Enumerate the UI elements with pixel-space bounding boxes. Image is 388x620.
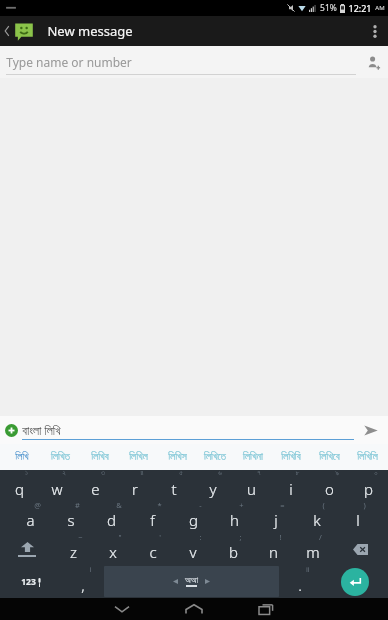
- button[interactable]: লিখিবি: [272, 444, 310, 470]
- button[interactable]: #: [50, 501, 91, 533]
- button[interactable]: Shift: [0, 533, 54, 565]
- staticText: লিখিবে: [319, 452, 340, 462]
- staticText: লিখিলি: [357, 452, 378, 462]
- button[interactable]: !: [253, 533, 293, 565]
- staticText: y: [209, 479, 217, 499]
- button[interactable]: Backspace: [333, 533, 388, 565]
- staticText: o: [325, 479, 334, 499]
- staticText: ২: [62, 469, 66, 477]
- staticText: লিখিতে: [204, 452, 226, 462]
- staticText: ৫: [179, 469, 183, 477]
- staticText: e: [91, 479, 100, 499]
- button[interactable]: ': [133, 533, 173, 565]
- staticText: 12:21: [348, 2, 372, 14]
- button[interactable]: Symbols and numbers: [0, 565, 62, 598]
- staticText: ৬: [218, 469, 222, 477]
- button[interactable]: :: [173, 533, 213, 565]
- staticText: b: [229, 542, 238, 562]
- button[interactable]: More options: [362, 16, 388, 46]
- button[interactable]: ১: [0, 470, 38, 501]
- button[interactable]: লিখিল: [119, 444, 158, 470]
- staticText: বাংলা লিখি: [22, 422, 61, 438]
- staticText: c: [149, 542, 157, 562]
- staticText: ;: [239, 532, 242, 542]
- button[interactable]: ;: [213, 533, 253, 565]
- staticText: h: [230, 510, 239, 530]
- staticText: s: [67, 510, 75, 530]
- button[interactable]: ৮: [271, 470, 310, 501]
- staticText: New message: [47, 22, 133, 40]
- button[interactable]: Space: [104, 566, 279, 597]
- button[interactable]: Hide keyboard: [86, 598, 158, 620]
- staticText: #: [75, 500, 80, 510]
- button[interactable]: &: [91, 501, 132, 533]
- staticText: @: [34, 500, 41, 510]
- button[interactable]: Navigate up: [2, 20, 37, 42]
- button[interactable]: ০: [349, 470, 388, 501]
- button[interactable]: ~: [54, 533, 93, 565]
- button[interactable]: Add recipient from contacts: [358, 46, 388, 78]
- button[interactable]: /: [293, 533, 333, 565]
- button[interactable]: লিখিতে: [196, 444, 234, 470]
- button[interactable]: Home: [158, 598, 230, 620]
- staticText: -: [199, 500, 202, 510]
- button[interactable]: Enter: [341, 568, 369, 596]
- staticText: ~: [78, 532, 83, 542]
- staticText: লিখি: [15, 452, 29, 462]
- staticText: লিখিল: [129, 452, 148, 462]
- staticText: ৭: [257, 469, 261, 477]
- button[interactable]: লিখিলি: [348, 444, 386, 470]
- button[interactable]: ২: [38, 470, 76, 501]
- button[interactable]: Add attachment: [0, 416, 22, 444]
- button[interactable]: লিখিত: [41, 444, 80, 470]
- button[interactable]: Type name or number: [6, 54, 356, 70]
- staticText: &: [116, 500, 122, 510]
- staticText: ৮: [295, 469, 300, 477]
- staticText: z: [70, 542, 77, 562]
- staticText: ": [118, 532, 122, 542]
- button[interactable]: ৩: [76, 470, 115, 501]
- staticText: u: [247, 479, 256, 499]
- button[interactable]: (: [296, 501, 337, 533]
- staticText: ,: [81, 575, 85, 595]
- staticText: লিখিত: [51, 452, 70, 462]
- button[interactable]: @: [10, 501, 50, 533]
- button[interactable]: -: [173, 501, 214, 533]
- button[interactable]: ৭: [232, 470, 271, 501]
- staticText: d: [107, 510, 116, 530]
- button[interactable]: ৫: [154, 470, 193, 501]
- button[interactable]: ॥: [279, 565, 321, 598]
- staticText: AM: [375, 4, 385, 12]
- staticText: ৪: [140, 469, 144, 477]
- staticText: i: [289, 479, 293, 499]
- button[interactable]: ৯: [310, 470, 349, 501]
- staticText: =: [280, 500, 285, 510]
- staticText: ॥: [305, 564, 310, 574]
- button[interactable]: ৪: [115, 470, 154, 501]
- staticText: লিখিব: [91, 452, 109, 462]
- button[interactable]: লিখিবে: [310, 444, 348, 470]
- button[interactable]: ): [337, 501, 378, 533]
- staticText: p: [364, 479, 373, 499]
- button[interactable]: ।: [62, 565, 104, 598]
- button[interactable]: লিখিব: [80, 444, 119, 470]
- staticText: f: [150, 510, 155, 530]
- button[interactable]: লিখিস: [158, 444, 196, 470]
- button[interactable]: লিখি: [2, 444, 41, 470]
- button[interactable]: ৬: [193, 470, 232, 501]
- button[interactable]: Recent apps: [230, 598, 302, 620]
- staticText: t: [171, 479, 177, 499]
- button[interactable]: ": [93, 533, 133, 565]
- button[interactable]: Send message: [354, 416, 388, 444]
- button[interactable]: লিখিনা: [234, 444, 272, 470]
- staticText: 123: [21, 576, 36, 588]
- staticText: a: [26, 510, 35, 530]
- button[interactable]: =: [255, 501, 296, 533]
- button[interactable]: +: [214, 501, 255, 533]
- staticText: r: [132, 479, 138, 499]
- staticText: 51%: [320, 2, 337, 14]
- staticText: !: [279, 532, 282, 542]
- button[interactable]: *: [132, 501, 173, 533]
- staticText: Type name or number: [6, 54, 132, 70]
- button[interactable]: বাংলা লিখি: [22, 416, 354, 444]
